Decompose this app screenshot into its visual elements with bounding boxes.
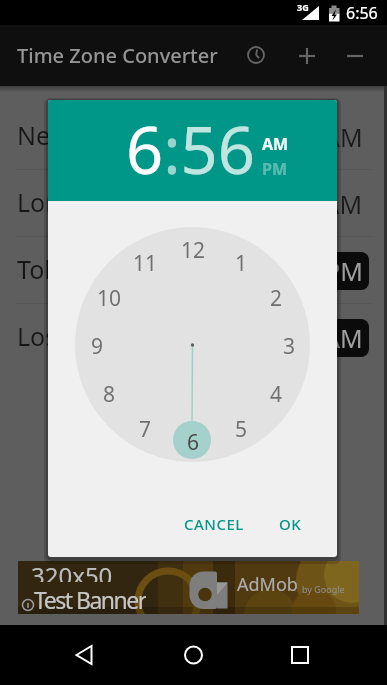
button[interactable]: PM bbox=[255, 158, 295, 180]
button[interactable] bbox=[236, 35, 280, 79]
button[interactable] bbox=[278, 633, 322, 677]
staticText: Tokyo bbox=[17, 252, 86, 286]
staticText: 7 bbox=[139, 415, 152, 441]
staticText: 3G bbox=[297, 1, 309, 13]
staticText: 12 bbox=[181, 236, 206, 262]
button[interactable]: 320x50 bbox=[18, 561, 359, 614]
staticText: by Google bbox=[302, 583, 345, 595]
button[interactable]: Los Angeles bbox=[0, 304, 387, 371]
staticText: 320x50 bbox=[31, 561, 113, 582]
button[interactable]: OK bbox=[260, 506, 320, 542]
button[interactable]: London bbox=[0, 170, 387, 237]
button[interactable]: Tokyo bbox=[0, 237, 387, 304]
staticText: 11:56 AM bbox=[253, 187, 363, 221]
staticText: New York bbox=[17, 118, 128, 152]
button[interactable]: AM bbox=[255, 133, 295, 155]
button[interactable] bbox=[286, 35, 330, 79]
staticText: 2 bbox=[270, 284, 283, 310]
staticText: 1 bbox=[235, 249, 248, 275]
button[interactable] bbox=[334, 35, 378, 79]
staticText: 8:56 PM bbox=[269, 254, 363, 288]
staticText: OK bbox=[279, 514, 302, 534]
staticText: 6 bbox=[187, 428, 200, 454]
staticText: 3 bbox=[283, 332, 296, 358]
button[interactable]: 8:56 PM bbox=[265, 252, 369, 290]
staticText: 3:56 AM bbox=[268, 321, 363, 355]
button[interactable]: 3:56 AM bbox=[265, 319, 369, 357]
staticText: AdMob bbox=[237, 572, 298, 597]
staticText: PM bbox=[262, 158, 288, 180]
button[interactable]: New York bbox=[0, 103, 387, 170]
button[interactable] bbox=[63, 633, 107, 677]
staticText: 7:56 AM bbox=[268, 120, 363, 154]
staticText: Time Zone Converter bbox=[17, 42, 218, 69]
staticText: CANCEL bbox=[184, 514, 244, 534]
button[interactable]: CANCEL bbox=[172, 506, 256, 542]
staticText: 9 bbox=[91, 332, 104, 358]
button[interactable] bbox=[171, 633, 215, 677]
staticText: 8 bbox=[103, 380, 116, 406]
staticText: 5 bbox=[235, 415, 248, 441]
staticText: 6:56 bbox=[346, 2, 378, 24]
staticText: Test Banner bbox=[34, 584, 146, 610]
staticText: Los Angeles bbox=[17, 319, 158, 353]
staticText: 11 bbox=[133, 249, 158, 275]
staticText: London bbox=[17, 185, 107, 219]
staticText: AM bbox=[262, 133, 289, 155]
staticText: 6:56 bbox=[126, 105, 255, 194]
staticText: 10 bbox=[97, 284, 122, 310]
staticText: 4 bbox=[270, 380, 283, 406]
